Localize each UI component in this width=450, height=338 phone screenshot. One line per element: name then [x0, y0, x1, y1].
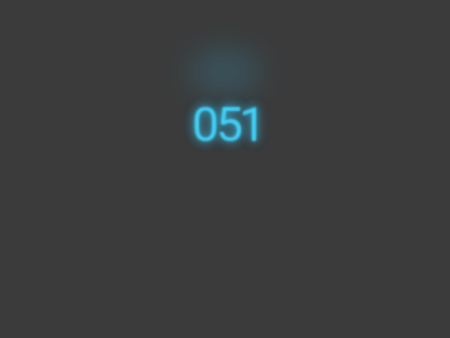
button[interactable]: Countdown 051: [0, 0, 450, 338]
